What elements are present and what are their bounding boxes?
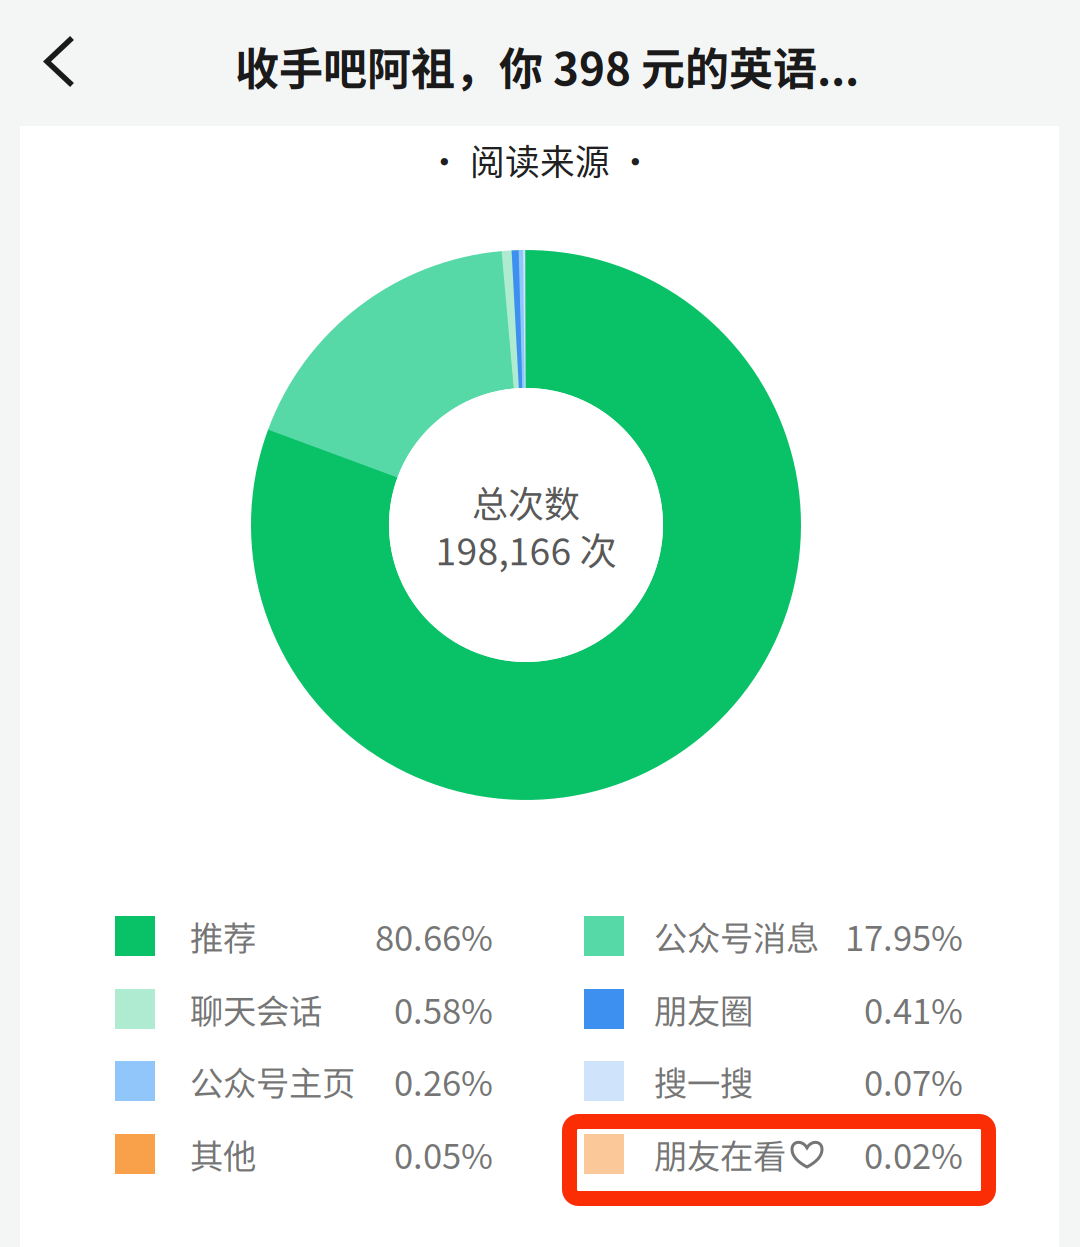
button[interactable]: 朋友在看 (576, 1120, 971, 1188)
button[interactable]: 聊天会话 (107, 975, 501, 1043)
staticText: 朋友在看 (654, 1130, 786, 1178)
staticText: 198,166 次 (435, 522, 616, 576)
staticText: 其他 (190, 1130, 256, 1178)
staticText: 80.66% (375, 911, 493, 961)
staticText: · 阅读来源 · (427, 135, 653, 185)
staticText: 收手吧阿祖，你 398 元的英语... (235, 34, 859, 98)
staticText: 公众号主页 (190, 1057, 355, 1105)
button[interactable]: 朋友圈 (576, 975, 971, 1043)
staticText: 0.26% (394, 1056, 493, 1106)
button[interactable]: 其他 (107, 1120, 501, 1188)
button[interactable]: 公众号消息 (576, 902, 971, 970)
staticText: 0.58% (394, 984, 493, 1034)
staticText: 朋友圈 (654, 985, 753, 1033)
button[interactable]: Back (14, 1, 105, 122)
staticText: 搜一搜 (654, 1057, 753, 1105)
staticText: 0.05% (394, 1129, 493, 1179)
staticText: 17.95% (845, 911, 963, 961)
button[interactable]: 推荐 (107, 902, 501, 970)
staticText: 0.02% (864, 1129, 963, 1179)
staticText: 0.41% (864, 984, 963, 1034)
staticText: 总次数 (472, 476, 580, 528)
staticText: 聊天会话 (190, 985, 322, 1033)
button[interactable]: 搜一搜 (576, 1047, 971, 1115)
staticText: 公众号消息 (654, 912, 819, 960)
staticText: 0.07% (864, 1056, 963, 1106)
staticText: 推荐 (190, 912, 256, 960)
button[interactable]: 公众号主页 (107, 1047, 501, 1115)
